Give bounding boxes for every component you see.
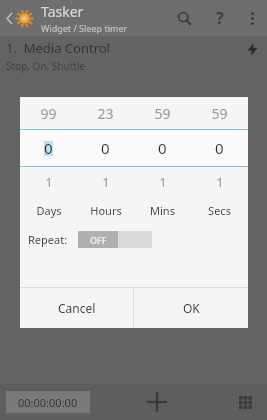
staticText: 59 xyxy=(211,104,228,123)
staticText: 59 xyxy=(154,104,171,123)
button[interactable]: Up xyxy=(0,0,38,36)
staticText: Stop, On, Shuttle xyxy=(6,59,86,73)
staticText: 1 xyxy=(102,173,110,191)
button[interactable]: 1. Media Control xyxy=(0,36,267,76)
staticText: OK xyxy=(183,300,200,316)
button[interactable]: Cancel xyxy=(20,288,133,328)
button[interactable]: Add xyxy=(90,384,223,420)
staticText: 0 xyxy=(44,138,53,158)
staticText: Repeat: xyxy=(28,232,68,247)
staticText: Hours xyxy=(90,203,122,218)
button[interactable]: More options xyxy=(237,0,267,36)
button[interactable]: 0 xyxy=(20,130,77,166)
staticText: 1 xyxy=(45,173,53,191)
staticText: 00:00:00:00 xyxy=(18,395,78,410)
staticText: 0 xyxy=(215,138,224,158)
button[interactable]: 0 xyxy=(191,130,248,166)
staticText: ? xyxy=(216,7,224,29)
button[interactable]: 0 xyxy=(134,130,191,166)
staticText: OFF xyxy=(90,234,107,246)
staticText: Cancel xyxy=(58,300,96,316)
button[interactable]: Search xyxy=(165,0,203,36)
staticText: Tasker xyxy=(41,2,84,21)
staticText: 1 xyxy=(159,173,167,191)
button[interactable]: Help xyxy=(203,0,237,36)
button[interactable]: Repeat off xyxy=(78,231,152,248)
staticText: Secs xyxy=(208,203,231,218)
staticText: Mins xyxy=(150,203,175,218)
staticText: Days xyxy=(36,203,62,218)
staticText: 23 xyxy=(97,104,114,123)
button[interactable]: 00:00:00:00 xyxy=(6,391,90,413)
staticText: 0 xyxy=(101,138,110,158)
button[interactable]: Grid view xyxy=(223,384,267,420)
staticText: 1 xyxy=(216,173,224,191)
staticText: 0 xyxy=(158,138,167,158)
staticText: 99 xyxy=(40,104,57,123)
button[interactable]: OK xyxy=(134,288,248,328)
staticText: Widget / Sleep timer xyxy=(41,22,128,34)
staticText: 1. Media Control xyxy=(6,39,110,57)
button[interactable]: 0 xyxy=(77,130,134,166)
